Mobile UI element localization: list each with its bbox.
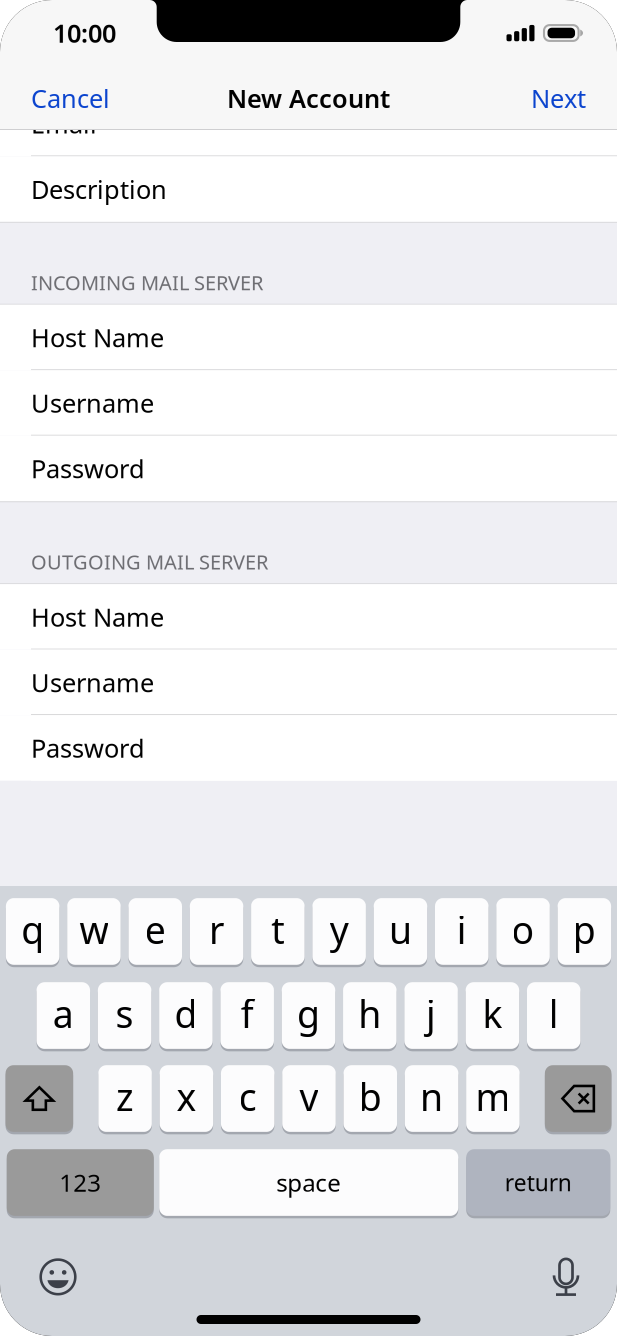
- staticText: space: [276, 1167, 341, 1198]
- staticText: i: [457, 905, 467, 954]
- button[interactable]: z: [98, 1065, 152, 1132]
- button[interactable]: g: [282, 982, 335, 1049]
- button[interactable]: e: [128, 898, 182, 965]
- staticText: 10:00: [53, 16, 116, 50]
- button[interactable]: p: [558, 898, 611, 965]
- button[interactable]: Dictation: [537, 1251, 595, 1303]
- staticText: s: [116, 989, 134, 1038]
- staticText: a: [53, 989, 74, 1038]
- staticText: z: [116, 1072, 134, 1121]
- staticText: INCOMING MAIL SERVER: [31, 269, 263, 296]
- staticText: Next: [531, 81, 586, 115]
- staticText: Host Name: [31, 600, 164, 634]
- staticText: u: [389, 905, 412, 954]
- staticText: x: [176, 1072, 196, 1121]
- button[interactable]: f: [220, 982, 274, 1049]
- button[interactable]: v: [282, 1065, 336, 1132]
- staticText: r: [209, 905, 224, 954]
- staticText: g: [297, 989, 320, 1038]
- button[interactable]: Delete: [545, 1065, 611, 1132]
- button[interactable]: d: [159, 982, 213, 1049]
- staticText: h: [358, 989, 381, 1038]
- button[interactable]: w: [67, 898, 121, 965]
- staticText: v: [299, 1072, 318, 1121]
- staticText: o: [512, 905, 535, 954]
- staticText: m: [475, 1072, 510, 1121]
- staticText: n: [420, 1072, 443, 1121]
- staticText: 123: [59, 1167, 101, 1198]
- staticText: return: [505, 1167, 572, 1198]
- button[interactable]: h: [343, 982, 397, 1049]
- button[interactable]: Username: [0, 370, 617, 436]
- button[interactable]: return: [466, 1149, 610, 1216]
- staticText: Email: [31, 107, 97, 140]
- staticText: q: [21, 905, 44, 954]
- button[interactable]: Description: [0, 156, 617, 222]
- button[interactable]: l: [527, 982, 580, 1049]
- staticText: k: [482, 989, 502, 1038]
- staticText: Username: [31, 386, 154, 420]
- button[interactable]: Host Name: [0, 584, 617, 650]
- button[interactable]: b: [343, 1065, 397, 1132]
- button[interactable]: Username: [0, 650, 617, 715]
- staticText: j: [426, 989, 436, 1038]
- staticText: b: [359, 1072, 382, 1121]
- button[interactable]: c: [221, 1065, 274, 1132]
- button[interactable]: Next: [515, 69, 602, 127]
- staticText: w: [79, 905, 108, 954]
- staticText: l: [549, 989, 559, 1038]
- button[interactable]: Host Name: [0, 305, 617, 370]
- button[interactable]: n: [405, 1065, 458, 1132]
- staticText: Username: [31, 665, 154, 699]
- button[interactable]: u: [374, 898, 427, 965]
- button[interactable]: Shift: [5, 1065, 73, 1132]
- button[interactable]: k: [466, 982, 519, 1049]
- staticText: Description: [31, 172, 167, 206]
- button[interactable]: x: [160, 1065, 213, 1132]
- staticText: t: [271, 905, 284, 954]
- button[interactable]: 123: [7, 1149, 154, 1216]
- staticText: c: [239, 1072, 257, 1121]
- button[interactable]: i: [435, 898, 488, 965]
- staticText: d: [174, 989, 197, 1038]
- button[interactable]: t: [251, 898, 305, 965]
- button[interactable]: Cancel: [15, 69, 126, 127]
- button[interactable]: Password: [0, 715, 617, 781]
- button[interactable]: Email: [0, 91, 617, 156]
- staticText: e: [145, 905, 166, 954]
- button[interactable]: Password: [0, 436, 617, 501]
- staticText: p: [573, 905, 596, 954]
- staticText: y: [330, 905, 349, 954]
- button[interactable]: r: [190, 898, 243, 965]
- button[interactable]: m: [466, 1065, 520, 1132]
- staticText: Password: [31, 731, 145, 765]
- button[interactable]: j: [404, 982, 458, 1049]
- button[interactable]: Emoji: [29, 1251, 87, 1303]
- button[interactable]: s: [98, 982, 151, 1049]
- button[interactable]: q: [6, 898, 59, 965]
- staticText: f: [241, 989, 254, 1038]
- staticText: OUTGOING MAIL SERVER: [31, 548, 268, 575]
- button[interactable]: o: [496, 898, 550, 965]
- button[interactable]: a: [37, 982, 90, 1049]
- button[interactable]: y: [312, 898, 366, 965]
- staticText: New Account: [227, 81, 390, 115]
- staticText: Password: [31, 452, 145, 485]
- button[interactable]: space: [159, 1149, 458, 1216]
- staticText: Cancel: [31, 81, 110, 115]
- staticText: Host Name: [31, 321, 164, 354]
